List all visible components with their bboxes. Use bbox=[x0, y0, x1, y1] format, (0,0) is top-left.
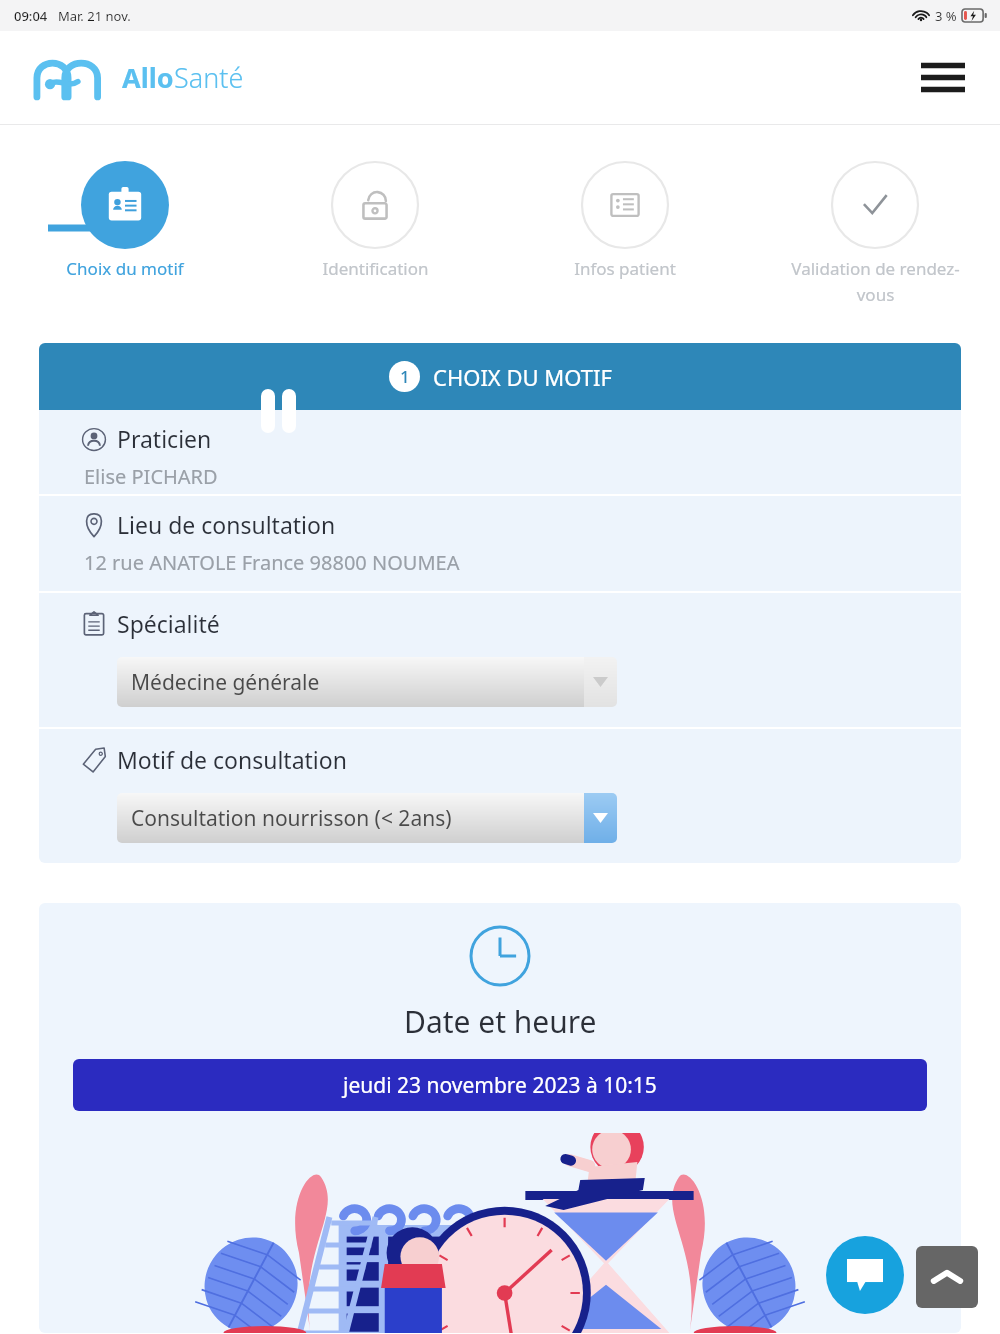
staticText: Médecine générale bbox=[131, 668, 320, 697]
button[interactable]: Menu bbox=[916, 51, 970, 105]
staticText: jeudi 23 novembre 2023 à 10:15 bbox=[343, 1071, 657, 1100]
button[interactable]: 1 bbox=[39, 343, 961, 410]
staticText: Identification bbox=[322, 257, 429, 280]
staticText: Santé bbox=[174, 59, 244, 96]
staticText: Spécialité bbox=[117, 608, 220, 639]
staticText: Consultation nourrisson (< 2ans) bbox=[131, 804, 452, 833]
staticText: Praticien bbox=[117, 423, 212, 454]
staticText: CHOIX DU MOTIF bbox=[433, 362, 612, 392]
staticText: Lieu de consultation bbox=[117, 509, 336, 540]
staticText: Infos patient bbox=[574, 257, 676, 280]
staticText: Choix du motif bbox=[66, 257, 184, 280]
button[interactable]: Spécialité bbox=[117, 657, 617, 707]
button[interactable]: Praticien bbox=[39, 410, 961, 494]
button[interactable]: Identification bbox=[250, 161, 500, 280]
staticText: Motif de consultation bbox=[117, 744, 347, 775]
button[interactable]: Scroll to top bbox=[916, 1246, 978, 1308]
button[interactable]: Lieu de consultation bbox=[39, 496, 961, 591]
staticText: Mar. 21 nov. bbox=[58, 7, 131, 25]
button[interactable]: jeudi 23 novembre 2023 à 10:15 bbox=[73, 1059, 927, 1111]
button[interactable]: Chat bbox=[826, 1236, 904, 1314]
staticText: 1 bbox=[400, 365, 410, 388]
button[interactable]: Motif de consultation bbox=[117, 793, 617, 843]
button[interactable]: Infos patient bbox=[500, 161, 750, 280]
staticText: Allo bbox=[122, 59, 174, 96]
button[interactable]: Validation de rendez- vous bbox=[750, 161, 1000, 306]
staticText: 3 % bbox=[935, 7, 957, 25]
staticText: 12 rue ANATOLE France 98800 NOUMEA bbox=[84, 549, 460, 576]
staticText: Date et heure bbox=[404, 1001, 597, 1042]
staticText: 09:04 bbox=[14, 7, 48, 25]
button[interactable]: Choix du motif bbox=[0, 161, 250, 280]
staticText: Validation de rendez- vous bbox=[791, 257, 960, 306]
staticText: Elise PICHARD bbox=[84, 463, 218, 490]
